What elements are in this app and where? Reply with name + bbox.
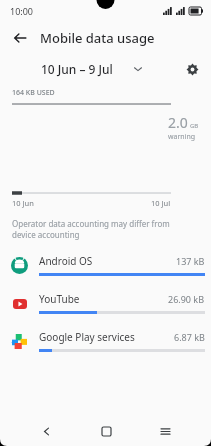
staticText: 164 KB USED bbox=[12, 88, 55, 98]
button[interactable]: Home bbox=[93, 418, 119, 444]
button[interactable]: 10 Jun – 9 Jul bbox=[37, 59, 147, 79]
staticText: 10 Jul bbox=[151, 198, 171, 208]
button[interactable]: Back bbox=[6, 24, 34, 52]
staticText: warning bbox=[168, 132, 196, 142]
staticText: Android OS bbox=[39, 254, 176, 268]
staticText: 10 Jun – 9 Jul bbox=[41, 61, 113, 77]
button[interactable]: YouTube bbox=[0, 284, 211, 322]
staticText: 6.87 kB bbox=[174, 331, 205, 343]
button[interactable]: Android OS bbox=[0, 246, 211, 284]
staticText: 10:00 bbox=[10, 5, 34, 17]
staticText: 137 kB bbox=[176, 255, 205, 267]
button[interactable]: Back bbox=[33, 418, 59, 444]
staticText: Google Play services bbox=[39, 330, 174, 344]
button[interactable]: Google Play services bbox=[0, 322, 211, 360]
staticText: YouTube bbox=[39, 292, 168, 306]
staticText: GB bbox=[190, 122, 199, 130]
button[interactable]: Recent apps bbox=[152, 418, 178, 444]
button[interactable]: Settings bbox=[179, 56, 205, 82]
staticText: Mobile data usage bbox=[40, 29, 155, 47]
staticText: 10 Jun bbox=[12, 198, 34, 208]
staticText: Operator data accounting may differ from… bbox=[12, 218, 185, 240]
staticText: 2.0 bbox=[168, 113, 188, 132]
staticText: 26.90 kB bbox=[168, 293, 205, 305]
